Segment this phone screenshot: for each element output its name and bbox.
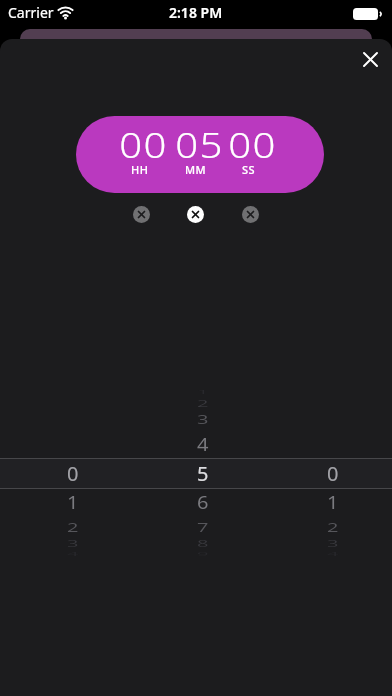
staticText: 1 [197, 388, 209, 396]
button[interactable] [187, 206, 204, 223]
staticText: 3 [197, 410, 209, 428]
staticText: 2 [327, 518, 339, 536]
button[interactable] [133, 206, 150, 223]
staticText: SS [242, 162, 256, 177]
staticText: 3 [67, 537, 79, 549]
button[interactable]: 00 [76, 116, 324, 193]
staticText: 05 [175, 122, 225, 168]
staticText: 3 [327, 537, 339, 549]
staticText: 5 [197, 460, 209, 487]
staticText: 0 [67, 460, 79, 487]
staticText: 1 [67, 491, 79, 514]
button[interactable] [242, 206, 259, 223]
staticText: Carrier [8, 3, 54, 22]
staticText: MM [185, 162, 207, 177]
staticText: 0 [327, 460, 339, 487]
staticText: 8 [197, 537, 209, 549]
staticText: 4 [327, 550, 339, 558]
staticText: 4 [67, 550, 79, 558]
staticText: 4 [197, 433, 209, 456]
staticText: 2:18 PM [169, 3, 223, 22]
staticText: 2 [67, 518, 79, 536]
staticText: 7 [197, 518, 209, 536]
button[interactable] [348, 39, 392, 79]
staticText: 00 [228, 122, 278, 168]
staticText: HH [131, 162, 149, 177]
staticText: 00 [119, 122, 169, 168]
staticText: 6 [197, 491, 209, 514]
staticText: 1 [327, 491, 339, 514]
staticText: 2 [197, 397, 209, 409]
